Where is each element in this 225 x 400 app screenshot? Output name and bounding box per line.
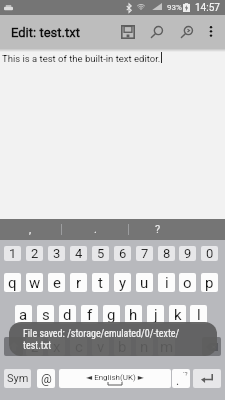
button[interactable]: p [201, 273, 218, 292]
button[interactable]: n [136, 337, 153, 356]
button[interactable]: 0 [201, 246, 218, 261]
button[interactable]: w [26, 273, 43, 292]
button[interactable]: , [0, 219, 61, 240]
button[interactable]: x [48, 337, 65, 356]
button[interactable]: Space, English (UK) [59, 369, 171, 388]
staticText: . [94, 223, 97, 236]
button[interactable]: 5 [92, 246, 109, 261]
staticText: , [29, 223, 32, 236]
staticText: 93% [167, 3, 182, 12]
staticText: p [205, 274, 214, 292]
button[interactable]: @ [37, 369, 55, 388]
button[interactable]: 6 [114, 246, 131, 261]
staticText: Sym [7, 372, 29, 385]
button[interactable]: Search [143, 15, 170, 48]
staticText: . [176, 374, 180, 388]
button[interactable]: b [114, 337, 131, 356]
button[interactable]: Shift [4, 337, 23, 356]
button[interactable]: . [62, 219, 128, 240]
button[interactable]: d [59, 305, 76, 324]
staticText: 1 [9, 246, 17, 261]
staticText: b [118, 338, 127, 356]
button[interactable]: ? [129, 219, 187, 240]
staticText: c [75, 338, 83, 356]
button[interactable]: y [114, 273, 131, 292]
staticText: 6 [119, 246, 127, 261]
staticText: test.txt [23, 340, 52, 352]
button[interactable]: Save [114, 15, 141, 48]
button[interactable]: f [81, 305, 98, 324]
button[interactable]: 9 [179, 246, 196, 261]
staticText: q [8, 274, 17, 292]
button[interactable]: a [15, 305, 32, 324]
button[interactable]: . [172, 369, 190, 388]
staticText: f [87, 306, 93, 324]
button[interactable]: j [147, 305, 164, 324]
staticText: d [63, 306, 72, 324]
staticText: o [183, 274, 192, 292]
button[interactable]: h [125, 305, 142, 324]
button[interactable]: q [4, 273, 21, 292]
staticText: @ [41, 372, 52, 386]
staticText: u [140, 274, 149, 292]
staticText: l [197, 306, 201, 324]
staticText: y [119, 274, 127, 292]
button[interactable]: m [158, 337, 175, 356]
staticText: 3 [53, 246, 61, 261]
staticText: File saved: /storage/emulated/0/-texte/ [23, 328, 180, 340]
button[interactable]: 1 [4, 246, 21, 261]
button[interactable]: r [70, 273, 87, 292]
staticText: s [42, 306, 50, 324]
button[interactable]: g [103, 305, 120, 324]
button[interactable]: o [179, 273, 196, 292]
button[interactable]: Backspace [202, 337, 221, 356]
button[interactable]: 2 [26, 246, 43, 261]
button[interactable]: z [26, 337, 43, 356]
staticText: i [165, 274, 169, 292]
staticText: ˊ? [183, 370, 188, 378]
button[interactable]: 7 [136, 246, 153, 261]
button[interactable]: Find next [173, 15, 200, 48]
staticText: 0 [206, 246, 214, 261]
staticText: a [19, 306, 28, 324]
staticText: 4 [75, 246, 83, 261]
staticText: 14:57 [195, 2, 220, 14]
staticText: h [129, 306, 138, 324]
button[interactable]: Enter [193, 369, 221, 388]
staticText: r [76, 274, 82, 292]
staticText: v [97, 338, 105, 356]
button[interactable]: t [92, 273, 109, 292]
button[interactable]: 4 [70, 246, 87, 261]
button[interactable]: More options [197, 15, 224, 48]
button[interactable]: e [48, 273, 65, 292]
staticText: Edit: test.txt [11, 25, 80, 40]
button[interactable]: i [158, 273, 175, 292]
staticText: t [98, 274, 103, 292]
button[interactable]: u [136, 273, 153, 292]
staticText: 9 [184, 246, 192, 261]
staticText: 5 [97, 246, 105, 261]
button[interactable]: s [37, 305, 54, 324]
staticText: x [53, 338, 61, 356]
staticText: z [31, 338, 39, 356]
button[interactable]: l [190, 305, 207, 324]
staticText: n [140, 338, 149, 356]
staticText: 7 [141, 246, 149, 261]
staticText: w [29, 274, 41, 292]
staticText: ? [155, 223, 161, 236]
button[interactable]: Sym [4, 369, 31, 388]
button[interactable]: 3 [48, 246, 65, 261]
staticText: 8 [163, 246, 171, 261]
button[interactable]: v [92, 337, 109, 356]
button[interactable]: k [169, 305, 186, 324]
staticText: This is a test of the built-in text edit… [2, 53, 161, 64]
staticText: e [53, 274, 61, 292]
staticText: 2 [31, 246, 39, 261]
staticText: k [174, 306, 182, 324]
staticText: m [160, 338, 174, 356]
staticText: ◄ English(UK) ► [86, 373, 144, 382]
staticText: g [107, 306, 116, 324]
staticText: j [154, 306, 158, 324]
button[interactable]: 8 [158, 246, 175, 261]
